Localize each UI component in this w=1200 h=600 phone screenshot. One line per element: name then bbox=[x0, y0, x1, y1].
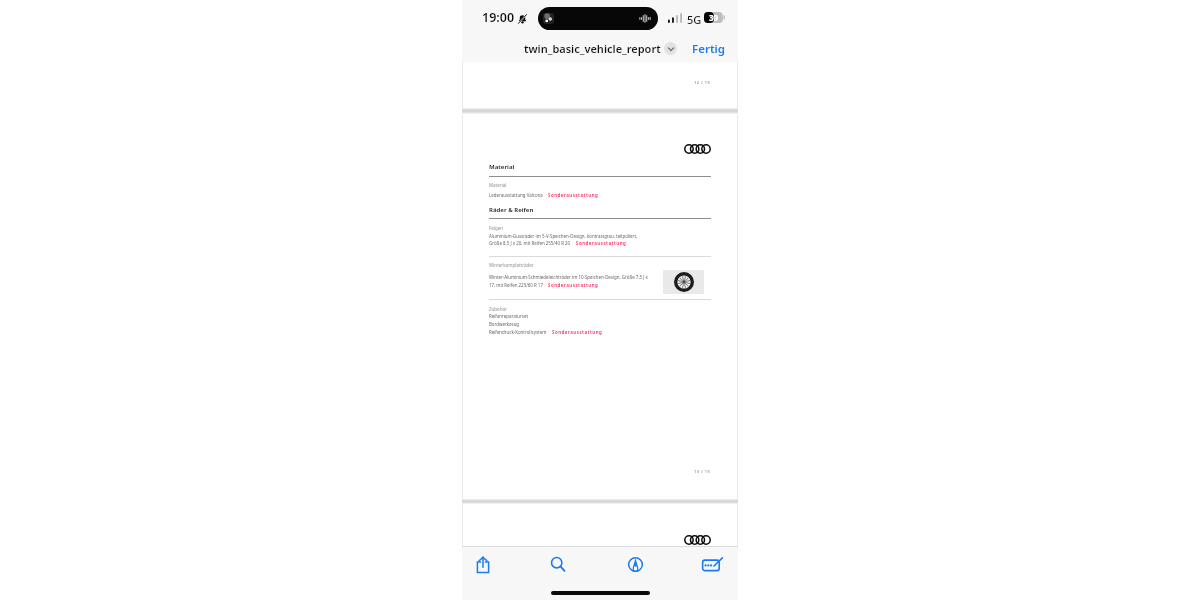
button[interactable]: Share bbox=[462, 549, 504, 579]
staticText: Fertig bbox=[692, 41, 726, 57]
staticText: 12 / 15 bbox=[694, 80, 711, 85]
staticText: Felgen bbox=[489, 225, 504, 231]
staticText: Sonderausstattung bbox=[548, 192, 599, 198]
button[interactable]: Document options bbox=[664, 42, 677, 55]
staticText: Sonderausstattung bbox=[548, 282, 599, 288]
staticText: 17, mit Reifen 225/60 R 17 bbox=[489, 282, 543, 288]
staticText: Aluminium-Gussräder im 5-V-Speichen-Desi… bbox=[489, 233, 638, 239]
staticText: Größe 8,5 J x 20, mit Reifen 255/40 R 20 bbox=[489, 240, 571, 246]
staticText: 19:00 bbox=[482, 9, 515, 26]
staticText: Reifendruck-Kontrollsystem bbox=[489, 329, 547, 335]
staticText: Material bbox=[489, 163, 515, 171]
staticText: Lederausstattung Valcona bbox=[489, 192, 543, 198]
button[interactable]: Fill and Sign bbox=[691, 549, 733, 579]
staticText: 5G bbox=[687, 12, 702, 27]
staticText: Reifenreparaturset bbox=[489, 313, 529, 319]
button[interactable]: Search bbox=[537, 549, 579, 579]
staticText: 13 / 15 bbox=[694, 469, 711, 474]
staticText: Zubehör bbox=[489, 306, 508, 312]
staticText: 39 bbox=[709, 12, 719, 23]
button[interactable]: Markup bbox=[614, 549, 656, 579]
staticText: twin_basic_vehicle_report bbox=[524, 41, 661, 56]
staticText: Sonderausstattung bbox=[552, 329, 603, 335]
staticText: Material bbox=[489, 182, 507, 188]
staticText: Winterkompletträder bbox=[489, 262, 534, 268]
button[interactable]: Fertig bbox=[682, 36, 738, 62]
staticText: Winter-Aluminium-Schmiedeleichträder im … bbox=[489, 274, 648, 280]
staticText: Sonderausstattung bbox=[576, 240, 627, 246]
staticText: Räder & Reifen bbox=[489, 206, 534, 214]
staticText: Bordwerkzeug bbox=[489, 321, 520, 327]
